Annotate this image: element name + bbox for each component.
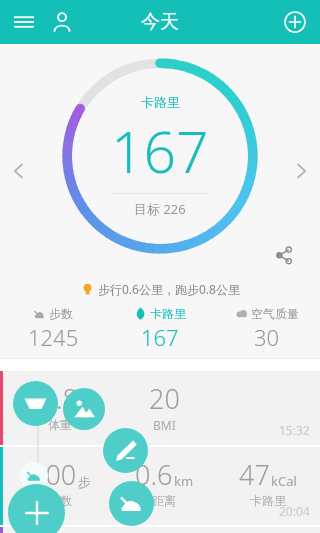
button[interactable]: 空气质量 [213,306,320,352]
staticText: 卡路里 [150,306,186,321]
button[interactable]: Share [268,240,298,270]
staticText: BMI [153,417,176,433]
button[interactable]: 47 [216,447,320,508]
button[interactable]: 20 [112,371,216,433]
button[interactable]: Add [276,3,314,41]
button[interactable]: 卡路里 [60,56,260,256]
staticText: 卡路里 [250,493,286,508]
staticText: 今天 [141,10,179,34]
button[interactable]: Add activity [8,484,65,533]
staticText: kg [80,396,95,414]
staticText: 步数 [48,493,72,508]
button[interactable]: Walk [20,462,48,490]
button[interactable]: 卡路里 [106,306,213,352]
staticText: 卡路里 [141,94,180,110]
button[interactable]: 步数 [0,306,106,352]
staticText: 15:32 [279,422,310,438]
staticText: 45 [25,380,56,417]
staticText: 步行0.6公里，跑步0.8公里 [98,281,240,297]
staticText: 0.6 [135,456,173,493]
button[interactable]: Profile [44,4,80,40]
staticText: 20 [149,380,180,417]
button[interactable]: Photo [63,388,105,430]
staticText: .8 [56,380,79,417]
staticText: 167 [141,322,179,352]
staticText: 距离 [152,493,176,508]
button[interactable]: Next [282,152,320,190]
button[interactable]: 0.6 [112,447,216,508]
staticText: 步数 [49,306,73,321]
staticText: 步 [78,474,91,490]
button[interactable]: Weight [13,381,58,426]
staticText: 目标 226 [134,200,186,218]
staticText: 1245 [28,322,79,352]
button[interactable]: Run [109,481,154,526]
button[interactable]: Previous [0,152,38,190]
staticText: 47 [239,456,270,493]
button[interactable]: Note [103,428,148,473]
staticText: 30 [254,322,280,352]
staticText: 167 [111,112,209,190]
staticText: 800 [30,456,77,493]
staticText: 20:04 [279,503,310,519]
staticText: kCal [271,472,297,490]
staticText: 体重 [48,417,72,432]
staticText: 空气质量 [251,306,299,321]
button[interactable]: 800 [8,447,112,508]
button[interactable]: Menu [6,4,42,40]
staticText: km [174,472,194,490]
button[interactable]: 45 [8,371,112,432]
